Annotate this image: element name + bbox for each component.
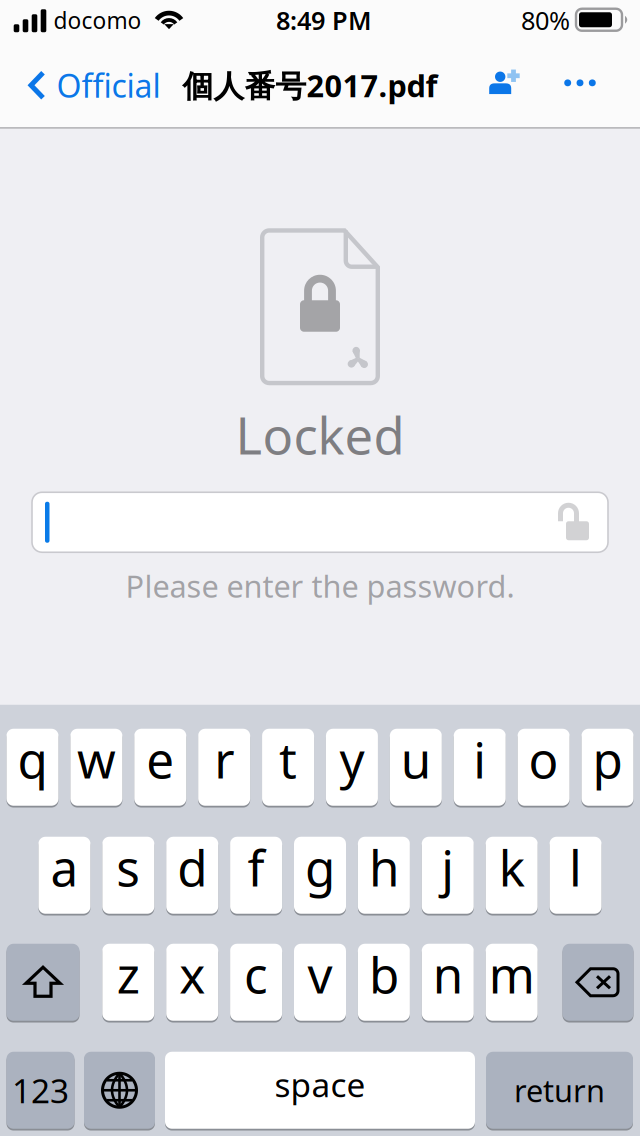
staticText: e [146,726,174,792]
staticText: m [489,941,535,1007]
button[interactable]: z [102,942,154,1022]
button[interactable]: t [262,727,314,807]
staticText: return [514,1070,605,1111]
button[interactable]: a [38,835,90,915]
staticText: u [401,726,431,792]
staticText: w [77,726,116,792]
button[interactable]: r [198,727,250,807]
button[interactable]: l [550,835,602,915]
button[interactable]: y [326,727,378,807]
button[interactable]: Delete [562,942,633,1022]
staticText: k [499,834,525,900]
staticText: y [339,726,364,792]
staticText: q [17,726,47,792]
button[interactable]: n [422,942,474,1022]
button[interactable]: e [134,727,186,807]
button[interactable]: j [422,835,474,915]
staticText: z [117,941,140,1007]
button[interactable]: d [166,835,218,915]
button[interactable]: w [70,727,122,807]
staticText: t [279,726,297,792]
button[interactable]: u [390,727,442,807]
button[interactable]: o [518,727,570,807]
staticText: d [177,834,207,900]
button[interactable]: f [230,835,282,915]
staticText: g [305,834,335,900]
staticText: space [274,1062,365,1106]
button[interactable]: x [166,942,218,1022]
staticText: Official [56,64,160,106]
staticText: s [116,834,140,900]
staticText: r [214,726,234,792]
staticText: i [473,726,486,792]
staticText: Please enter the password. [125,565,514,606]
button[interactable]: g [294,835,346,915]
button[interactable]: k [486,835,538,915]
staticText: x [179,941,205,1007]
button[interactable]: q [6,727,58,807]
staticText: 80% [521,3,570,37]
staticText: f [248,834,265,900]
staticText: c [244,941,268,1007]
staticText: 8:49 PM [276,3,372,37]
staticText: b [369,941,399,1007]
button[interactable]: v [294,942,346,1022]
button[interactable]: h [358,835,410,915]
staticText: docomo [53,5,141,35]
staticText: 123 [12,1068,69,1112]
staticText: v [307,941,332,1007]
staticText: o [529,726,559,792]
button[interactable]: m [486,942,538,1022]
button[interactable]: space [165,1050,475,1130]
button[interactable]: s [102,835,154,915]
button[interactable]: c [230,942,282,1022]
button[interactable]: b [358,942,410,1022]
button[interactable]: p [581,727,633,807]
button[interactable]: Add people [474,40,536,124]
button[interactable]: Official [0,43,172,127]
staticText: p [592,726,622,792]
staticText: h [369,834,399,900]
staticText: Locked [235,401,404,468]
staticText: j [441,834,454,900]
staticText: a [50,834,78,900]
button[interactable]: More options [549,41,611,125]
staticText: n [433,941,463,1007]
button[interactable]: 123 [6,1050,74,1130]
button[interactable]: i [454,727,506,807]
staticText: l [569,834,582,900]
button[interactable]: Shift [6,942,79,1022]
button[interactable]: 個人番号2017.pdf [182,43,437,127]
button[interactable]: Next keyboard [84,1050,155,1130]
button[interactable]: return [486,1050,633,1130]
staticText: 個人番号2017.pdf [182,65,437,106]
